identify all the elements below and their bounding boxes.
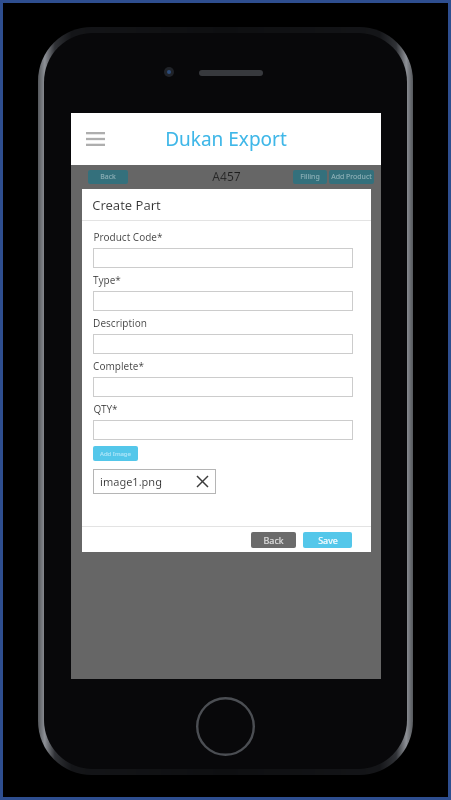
- button[interactable]: [93, 377, 353, 397]
- staticText: Description: [93, 316, 147, 330]
- button[interactable]: Add Product: [329, 170, 374, 184]
- button[interactable]: Save: [303, 532, 352, 548]
- button[interactable]: [93, 334, 353, 354]
- staticText: image1.png: [100, 474, 162, 489]
- staticText: Save: [318, 534, 338, 546]
- staticText: QTY*: [93, 402, 118, 416]
- staticText: A457: [212, 168, 241, 184]
- other: Remove image: [197, 476, 208, 487]
- staticText: Type*: [93, 273, 121, 287]
- staticText: Back: [100, 172, 116, 182]
- button[interactable]: [93, 291, 353, 311]
- staticText: Product Code*: [93, 230, 163, 244]
- button[interactable]: image1.png: [93, 469, 216, 494]
- button[interactable]: [93, 248, 353, 268]
- staticText: Dukan Export: [165, 126, 287, 152]
- staticText: Add Product: [331, 172, 372, 182]
- button[interactable]: Filling: [293, 170, 327, 184]
- button[interactable]: [93, 420, 353, 440]
- button[interactable]: Open navigation menu: [79, 123, 111, 155]
- staticText: Create Part: [92, 196, 161, 214]
- button[interactable]: Add Image: [93, 446, 138, 461]
- staticText: Back: [263, 534, 284, 546]
- staticText: Add Image: [100, 450, 131, 458]
- staticText: Complete*: [93, 359, 144, 373]
- staticText: Filling: [300, 172, 320, 182]
- button[interactable]: Back: [251, 532, 296, 548]
- button[interactable]: Back: [88, 170, 128, 184]
